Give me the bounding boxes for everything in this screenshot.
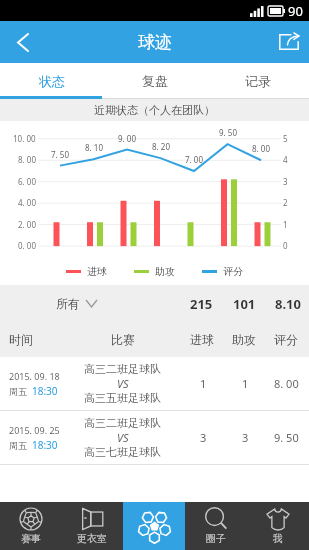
button[interactable]: 球迹 [123, 502, 185, 550]
button[interactable]: 复盘 [103, 63, 206, 99]
staticText: 8. 00 [18, 154, 36, 165]
staticText: 高三七班足球队 [84, 445, 161, 459]
staticText: 4 [283, 154, 288, 165]
staticText: 复盘 [142, 73, 168, 89]
staticText: 2015. 09. 25 [9, 424, 60, 436]
staticText: 评分 [223, 265, 243, 278]
staticText: 进球 [190, 332, 214, 347]
staticText: 近期状态（个人在团队） [94, 103, 215, 117]
staticText: 圈子 [206, 532, 226, 545]
staticText: 9. 00 [118, 133, 136, 144]
staticText: 周五 [9, 440, 27, 451]
button[interactable]: Back [0, 21, 44, 63]
staticText: 0 [283, 240, 288, 251]
staticText: VS [117, 430, 129, 445]
staticText: 时间 [9, 332, 33, 347]
staticText: 2015. 09. 18 [9, 370, 60, 382]
staticText: 高三五班足球队 [84, 391, 161, 405]
staticText: 3 [200, 430, 207, 445]
staticText: 比赛 [111, 332, 135, 347]
staticText: 215 [190, 295, 213, 313]
staticText: 我 [273, 532, 283, 545]
staticText: 1 [283, 219, 288, 230]
staticText: 4. 00 [18, 197, 36, 208]
staticText: 18:30 [32, 384, 58, 398]
staticText: 5 [283, 133, 288, 144]
button[interactable]: 所有 [56, 296, 97, 311]
staticText: 90 [288, 2, 303, 20]
button[interactable]: 我 [247, 502, 309, 550]
staticText: 101 [233, 295, 256, 313]
staticText: 高三二班足球队 [84, 416, 161, 430]
staticText: 9. 50 [219, 127, 237, 138]
staticText: 赛事 [21, 532, 41, 545]
staticText: 更衣室 [77, 532, 107, 545]
staticText: 18:30 [32, 438, 58, 452]
staticText: 1 [242, 376, 249, 391]
button[interactable]: 圈子 [185, 502, 247, 550]
button[interactable]: Share [269, 21, 309, 63]
staticText: 进球 [87, 265, 107, 278]
staticText: 1 [200, 376, 207, 391]
staticText: 3 [283, 176, 288, 187]
staticText: 9. 50 [274, 430, 299, 445]
staticText: 评分 [274, 332, 298, 347]
button[interactable]: 状态 [0, 63, 103, 99]
staticText: 状态 [39, 73, 65, 89]
staticText: 助攻 [155, 265, 175, 278]
button[interactable]: 赛事 [0, 502, 61, 550]
staticText: 助攻 [232, 332, 256, 347]
staticText: 8. 20 [152, 141, 170, 152]
staticText: 8. 00 [274, 376, 299, 391]
staticText: 3 [242, 430, 249, 445]
staticText: 所有 [56, 296, 80, 311]
staticText: 6. 00 [18, 176, 36, 187]
button[interactable]: 记录 [206, 63, 309, 99]
staticText: 7. 00 [185, 154, 203, 165]
staticText: 8.10 [275, 295, 301, 313]
staticText: 球迹 [138, 32, 172, 53]
button[interactable]: 2015. 09. 25 [0, 411, 309, 464]
staticText: 7. 50 [51, 149, 69, 160]
staticText: 2. 00 [18, 219, 36, 230]
button[interactable]: 更衣室 [61, 502, 123, 550]
staticText: 记录 [245, 73, 271, 89]
button[interactable]: 2015. 09. 18 [0, 357, 309, 410]
staticText: 8. 10 [85, 142, 103, 153]
staticText: 高三二班足球队 [84, 362, 161, 376]
staticText: 0. 00 [18, 240, 36, 251]
staticText: VS [117, 376, 129, 391]
staticText: 周五 [9, 386, 27, 397]
staticText: 2 [283, 197, 288, 208]
staticText: 10. 00 [13, 133, 36, 144]
staticText: 8. 00 [252, 143, 270, 154]
